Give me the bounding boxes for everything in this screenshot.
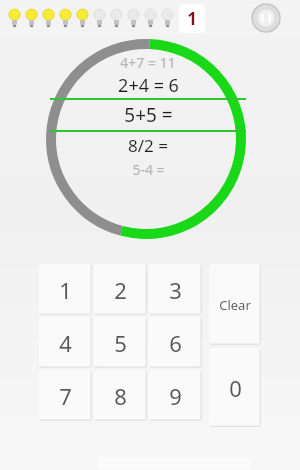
button[interactable]: 2 [94,264,147,315]
button[interactable]: Pause [251,3,281,33]
staticText: 1 [59,275,72,305]
button[interactable]: 1 [179,4,205,33]
button[interactable]: 6 [149,317,202,368]
staticText: 9 [169,381,182,411]
staticText: 0 [229,373,242,403]
staticText: 2+4 = 6 [118,73,179,98]
button[interactable]: 4 [39,317,92,368]
staticText: 5+5 = [124,102,173,128]
staticText: 5 [114,328,127,358]
staticText: 7 [59,381,72,411]
staticText: 1 [187,7,197,30]
button[interactable]: 3 [149,264,202,315]
staticText: 4 [59,328,72,358]
button[interactable]: 1 [39,264,92,315]
button[interactable]: 8 [94,370,147,421]
staticText: 4+7 = 11 [120,53,176,72]
staticText: 6 [169,328,182,358]
button[interactable]: 0 [209,348,261,427]
staticText: 8/2 = [128,134,168,157]
button[interactable]: 9 [149,370,202,421]
button[interactable]: 7 [39,370,92,421]
staticText: 2 [114,275,127,305]
staticText: Clear [219,296,251,314]
staticText: 8 [114,381,127,411]
button[interactable]: 5 [94,317,147,368]
staticText: 5-4 = [132,160,165,179]
staticText: 3 [169,275,182,305]
button[interactable]: Clear [209,264,261,345]
